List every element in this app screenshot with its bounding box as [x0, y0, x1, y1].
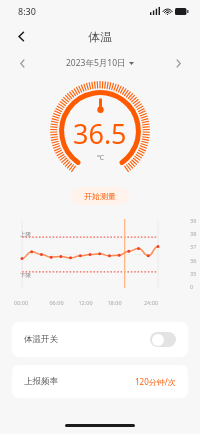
staticText: 39 — [190, 217, 197, 224]
staticText: 开始测量 — [84, 191, 116, 201]
staticText: 体温 — [88, 29, 112, 44]
staticText: 38 — [190, 230, 197, 237]
staticText: 06:00 — [42, 299, 71, 306]
staticText: 18:00 — [100, 299, 129, 306]
button[interactable]: 上报频率 — [12, 365, 188, 398]
staticText: 35 — [190, 270, 197, 277]
staticText: 上报频率 — [24, 376, 58, 387]
button[interactable]: 2023年5月10日 — [32, 57, 168, 69]
button[interactable]: Back — [8, 23, 34, 49]
staticText: 36 — [190, 257, 197, 264]
staticText: 下限 — [20, 272, 31, 279]
staticText: 0 — [190, 283, 194, 290]
staticText: 00:00 — [14, 299, 42, 306]
staticText: 120分钟/次 — [135, 376, 176, 387]
staticText: 8:30 — [18, 5, 36, 17]
staticText: 36.5 — [73, 115, 127, 152]
button[interactable]: 体温开关 — [12, 322, 188, 357]
staticText: 12:00 — [71, 299, 100, 306]
staticText: 37 — [190, 243, 197, 250]
staticText: 24:00 — [129, 299, 158, 306]
button[interactable]: Next day — [168, 53, 188, 73]
staticText: ℃ — [97, 153, 104, 163]
staticText: 上限 — [20, 231, 31, 238]
button[interactable]: 开始测量 — [71, 187, 129, 205]
staticText: 2023年5月10日 — [66, 57, 126, 69]
button[interactable]: Previous day — [12, 53, 32, 73]
staticText: 体温开关 — [24, 334, 58, 345]
